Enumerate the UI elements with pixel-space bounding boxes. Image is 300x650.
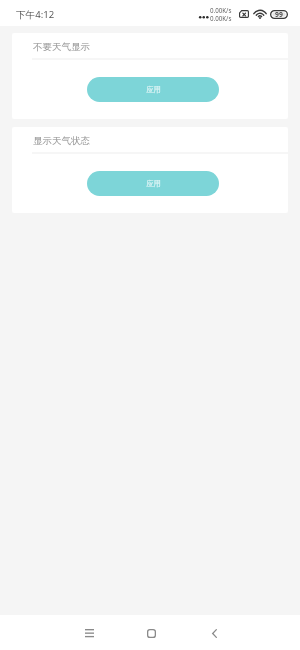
button[interactable]: 应用 [87, 171, 219, 196]
button[interactable]: Recent apps [69, 615, 109, 650]
staticText: 0.00K/s [210, 6, 232, 14]
button[interactable]: 应用 [87, 77, 219, 102]
staticText: 0.00K/s [210, 14, 232, 22]
staticText: 显示天气状态 [33, 135, 90, 147]
other: Battery 99 percent [270, 10, 288, 19]
button[interactable]: 不要天气显示 [12, 33, 288, 60]
other: Wi-Fi connected [254, 10, 266, 19]
button[interactable]: Home [131, 615, 171, 650]
staticText: 不要天气显示 [33, 41, 90, 53]
button[interactable]: 显示天气状态 [12, 127, 288, 154]
staticText: 99 [275, 10, 283, 19]
staticText: 应用 [146, 85, 161, 94]
staticText: 下午4:12 [16, 8, 55, 21]
staticText: 应用 [146, 179, 161, 188]
other: No SIM card [239, 10, 249, 18]
button[interactable]: Back [194, 615, 234, 650]
